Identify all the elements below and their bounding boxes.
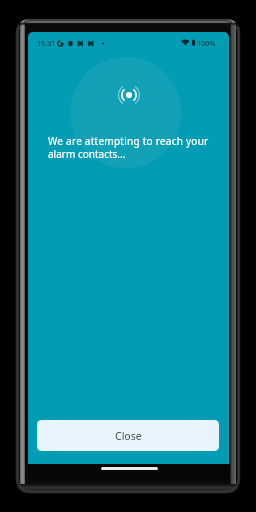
staticText: alarm contacts... xyxy=(48,147,126,161)
staticText: 15:31 xyxy=(37,38,56,48)
button[interactable]: Close xyxy=(37,420,219,451)
staticText: 100% xyxy=(197,38,216,48)
staticText: Close xyxy=(115,429,142,443)
staticText: We are attempting to reach your xyxy=(48,134,209,148)
